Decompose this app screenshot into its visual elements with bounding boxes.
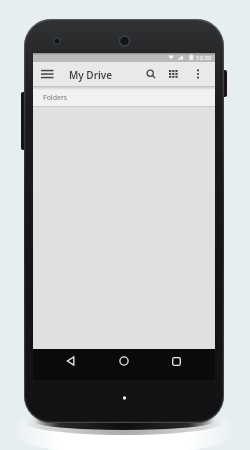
button[interactable] — [109, 349, 139, 373]
button[interactable] — [142, 63, 160, 85]
staticText: Folders — [43, 93, 68, 103]
button[interactable] — [189, 63, 207, 85]
button[interactable]: Folders — [33, 86, 215, 106]
staticText: My Drive — [69, 68, 113, 82]
button[interactable] — [161, 349, 191, 373]
button[interactable] — [55, 349, 85, 373]
button[interactable] — [37, 63, 57, 85]
button[interactable] — [164, 63, 183, 85]
staticText: 12:30 — [196, 54, 212, 62]
